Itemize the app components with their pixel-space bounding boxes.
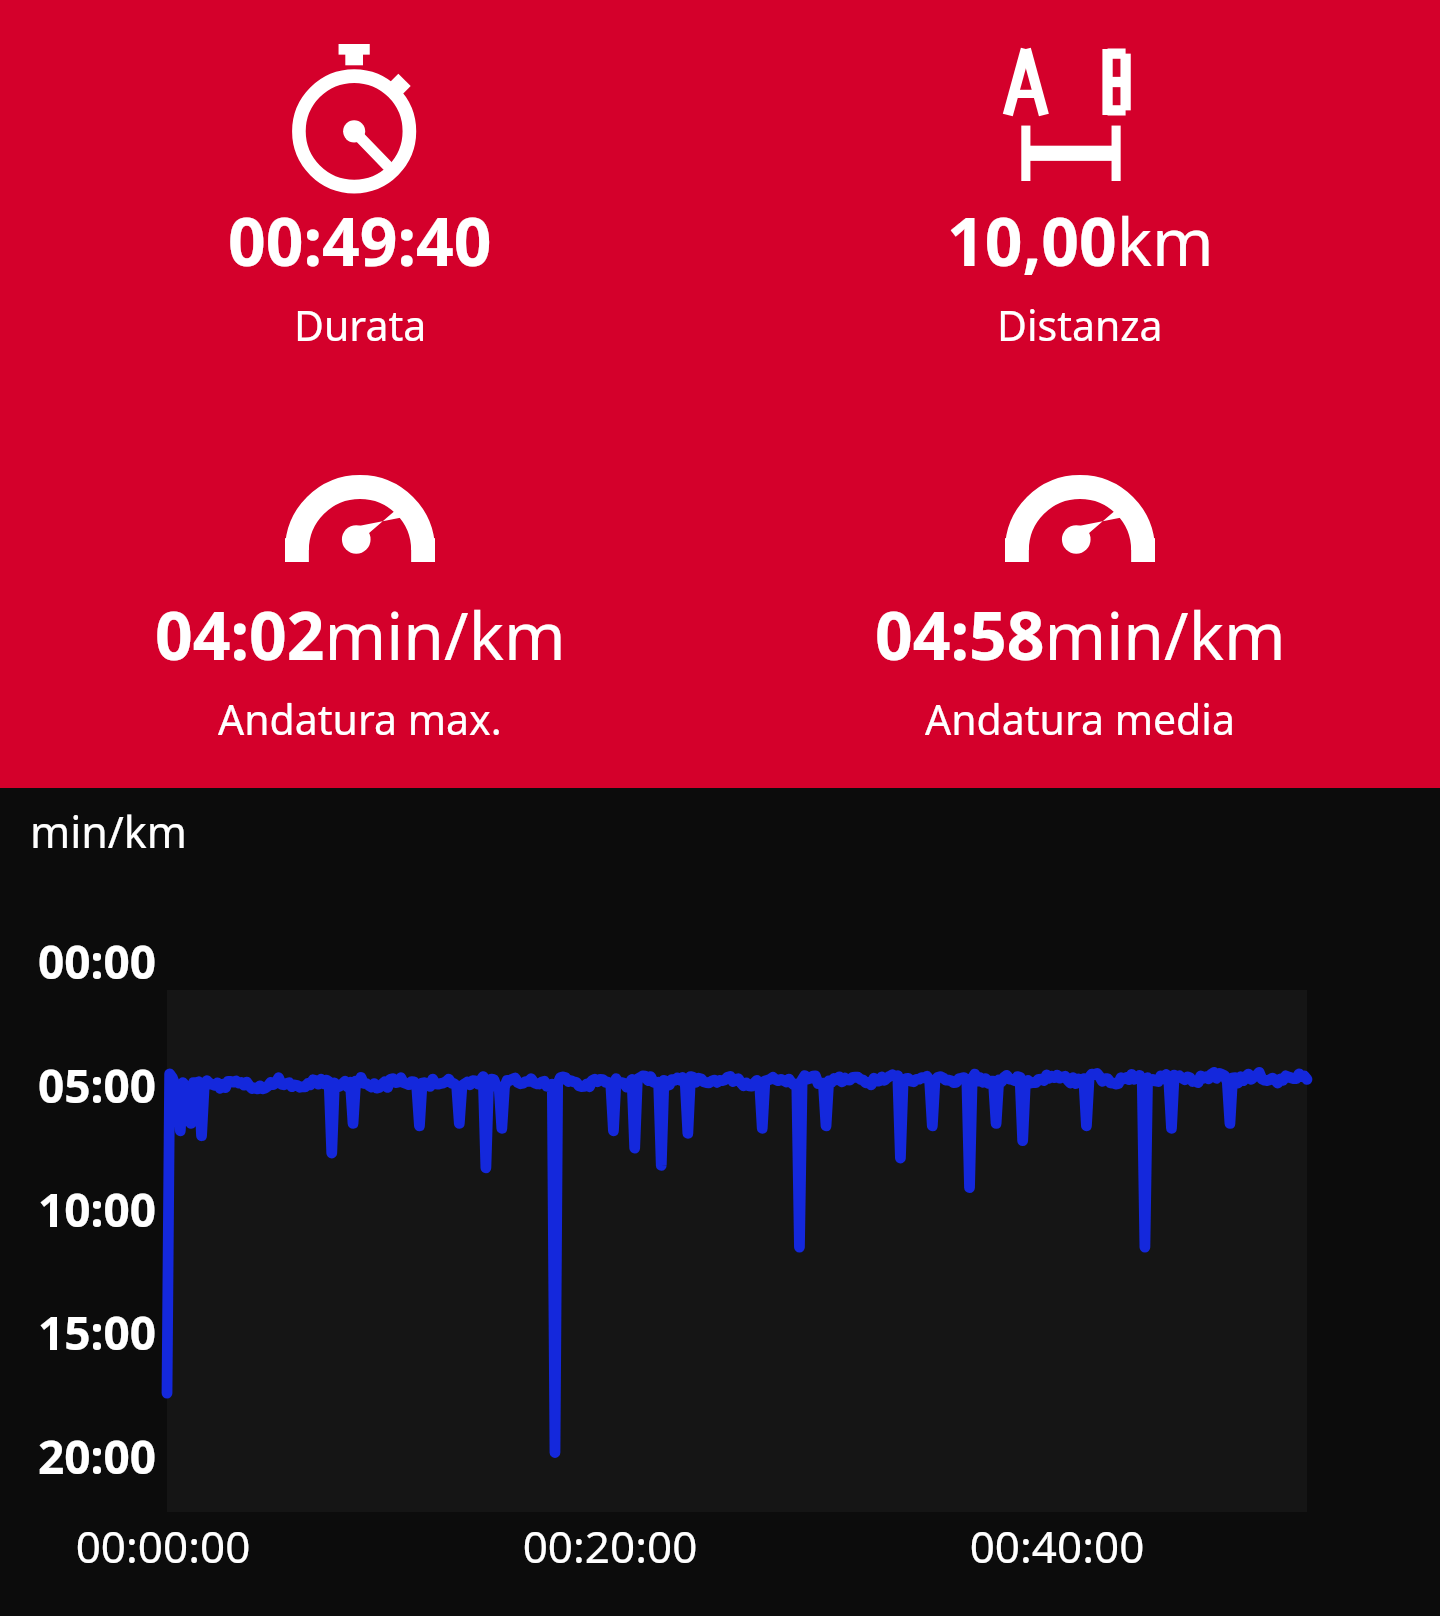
button[interactable]: Average pace <box>720 394 1440 788</box>
staticText: min/km <box>30 802 188 861</box>
staticText: 00:40:00 <box>952 1516 1162 1576</box>
staticText: 04:58min/km <box>875 589 1286 679</box>
staticText: Distanza <box>997 297 1163 353</box>
staticText: 00:49:40 <box>228 195 492 285</box>
button[interactable]: Duration <box>0 0 720 394</box>
staticText: 00:00 <box>38 930 157 993</box>
staticText: 00:00:00 <box>58 1516 268 1576</box>
staticText: Andatura media <box>925 691 1235 747</box>
staticText: Andatura max. <box>218 691 502 747</box>
button[interactable]: Maximum pace <box>0 394 720 788</box>
staticText: 10,00km <box>947 195 1214 285</box>
staticText: 04:02min/km <box>155 589 566 679</box>
staticText: Durata <box>294 297 427 353</box>
staticText: 05:00 <box>38 1054 157 1117</box>
button[interactable]: min/km <box>0 788 1440 1616</box>
staticText: 20:00 <box>38 1425 157 1488</box>
staticText: 15:00 <box>38 1301 157 1364</box>
staticText: 10:00 <box>38 1178 157 1241</box>
staticText: 00:20:00 <box>505 1516 715 1576</box>
button[interactable]: Distance <box>720 0 1440 394</box>
